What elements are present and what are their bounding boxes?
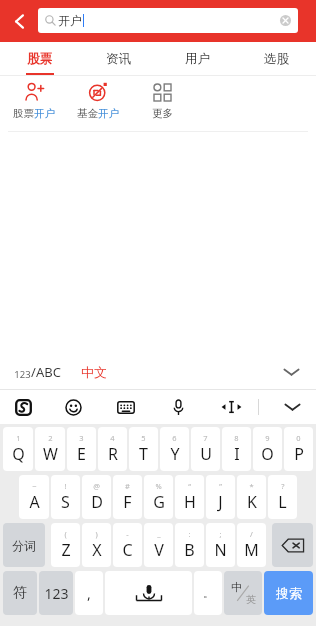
staticText: 7	[203, 433, 208, 443]
staticText: ABC	[36, 363, 61, 381]
staticText: S	[61, 491, 70, 513]
staticText: Z	[61, 539, 71, 561]
staticText: 中文	[81, 364, 107, 380]
staticText: 选股	[264, 51, 289, 67]
button[interactable]: Back	[0, 0, 38, 42]
button[interactable]: Move cursor	[204, 390, 258, 424]
staticText: J	[218, 491, 223, 513]
staticText: 开户	[98, 107, 119, 120]
button[interactable]: #	[113, 475, 142, 519]
staticText: T	[139, 443, 148, 465]
button[interactable]: 中文	[81, 364, 107, 380]
staticText: H	[184, 491, 196, 513]
button[interactable]: 8	[222, 427, 251, 471]
button[interactable]: :	[175, 523, 204, 567]
button[interactable]: 更多	[130, 81, 194, 129]
button[interactable]: Clear text	[279, 14, 292, 27]
button[interactable]: ?	[268, 475, 297, 519]
button[interactable]: Chinese English toggle	[224, 571, 262, 615]
button[interactable]: *	[237, 475, 266, 519]
button[interactable]: /	[237, 523, 266, 567]
staticText: ”	[219, 481, 222, 491]
staticText: _	[157, 529, 161, 539]
button[interactable]: 股票	[2, 81, 66, 129]
button[interactable]: 搜索	[264, 571, 313, 615]
staticText: B	[184, 539, 195, 561]
button[interactable]: Backspace	[272, 523, 313, 567]
staticText: 8	[234, 433, 239, 443]
staticText: -	[126, 529, 129, 539]
button[interactable]: 6	[160, 427, 189, 471]
staticText: R	[108, 443, 118, 465]
button[interactable]: -	[113, 523, 142, 567]
button[interactable]: ~	[19, 475, 49, 519]
button[interactable]: Hide keyboard	[268, 390, 316, 424]
staticText: (	[64, 529, 67, 539]
staticText: E	[77, 443, 86, 465]
staticText: F	[123, 491, 132, 513]
button[interactable]: 1	[3, 427, 33, 471]
staticText: C	[122, 539, 133, 561]
staticText: :	[188, 529, 191, 539]
staticText: 2	[48, 433, 53, 443]
button[interactable]: _	[144, 523, 173, 567]
staticText: 123	[44, 584, 69, 603]
button[interactable]: )	[82, 523, 111, 567]
button[interactable]: (	[51, 523, 80, 567]
staticText: M	[244, 539, 259, 561]
staticText: 4	[110, 433, 115, 443]
staticText: 符	[13, 584, 27, 602]
button[interactable]: 3	[67, 427, 96, 471]
button[interactable]: 股票	[0, 42, 79, 76]
staticText: Y	[170, 443, 180, 465]
button[interactable]: ;	[206, 523, 235, 567]
button[interactable]: 开户	[38, 8, 298, 33]
button[interactable]: 5	[129, 427, 158, 471]
button[interactable]: 0	[284, 427, 313, 471]
button[interactable]: Voice input	[152, 390, 204, 424]
button[interactable]: @	[82, 475, 111, 519]
button[interactable]: Collapse panel	[278, 359, 304, 385]
button[interactable]: Space, hold for voice	[105, 571, 192, 615]
button[interactable]: Emoji	[46, 390, 100, 424]
staticText: 搜索	[276, 585, 302, 601]
staticText: O	[261, 443, 274, 465]
button[interactable]: ,	[75, 571, 103, 615]
button[interactable]: !	[51, 475, 80, 519]
button[interactable]: 选股	[237, 42, 316, 76]
staticText: X	[92, 539, 102, 561]
button[interactable]: ”	[206, 475, 235, 519]
button[interactable]: 符	[3, 571, 37, 615]
button[interactable]: 资讯	[79, 42, 158, 76]
staticText: G	[153, 491, 165, 513]
staticText: 基金	[77, 107, 98, 120]
staticText: I	[234, 443, 240, 465]
button[interactable]: 用户	[158, 42, 237, 76]
staticText: 5	[141, 433, 146, 443]
staticText: ;	[219, 529, 222, 539]
staticText: 0	[296, 433, 301, 443]
button[interactable]: 9	[253, 427, 282, 471]
button[interactable]: Keyboard layout	[100, 390, 152, 424]
button[interactable]: 123	[14, 363, 61, 381]
staticText: /	[250, 529, 253, 539]
button[interactable]: Sogou input	[0, 390, 46, 424]
button[interactable]: “	[175, 475, 204, 519]
staticText: #	[125, 481, 130, 491]
button[interactable]: 基金	[66, 81, 130, 129]
button[interactable]: 。	[194, 571, 222, 615]
staticText: D	[91, 491, 103, 513]
button[interactable]: %	[144, 475, 173, 519]
button[interactable]: 分词	[3, 523, 45, 567]
staticText: “	[188, 481, 191, 491]
staticText: 分词	[12, 538, 36, 553]
staticText: ~	[32, 481, 37, 491]
staticText: W	[43, 443, 58, 465]
button[interactable]: 123	[39, 571, 73, 615]
staticText: 更多	[152, 107, 173, 120]
button[interactable]: 7	[191, 427, 220, 471]
button[interactable]: 4	[98, 427, 127, 471]
button[interactable]: 2	[35, 427, 65, 471]
staticText: P	[294, 443, 304, 465]
staticText: %	[155, 481, 162, 491]
